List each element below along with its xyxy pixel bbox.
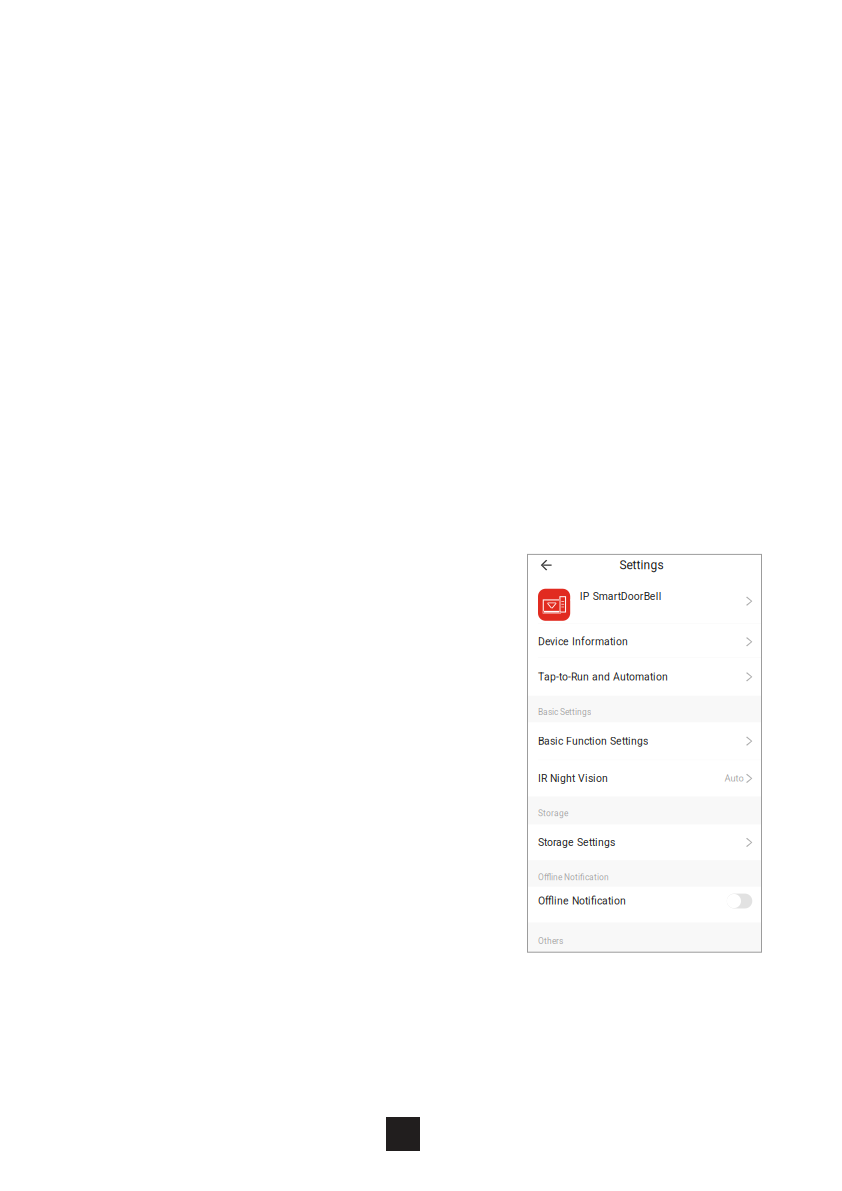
staticText: Device Information — [538, 636, 628, 648]
button[interactable]: Device Information — [527, 624, 761, 657]
staticText: IR Night Vision — [538, 772, 608, 784]
button[interactable]: IR Night Vision — [527, 760, 761, 796]
staticText: Tap-to-Run and Automation — [538, 671, 668, 683]
staticText: Basic Settings — [538, 707, 591, 717]
button[interactable]: Offline Notification — [527, 887, 761, 922]
button[interactable]: Storage Settings — [527, 825, 761, 860]
button[interactable]: Basic Function Settings — [527, 722, 761, 760]
staticText: Storage — [538, 809, 568, 818]
staticText: IP SmartDoorBell — [580, 590, 662, 603]
staticText: Offline Notification — [538, 895, 626, 907]
button[interactable]: Tap-to-Run and Automation — [527, 658, 761, 696]
staticText: Storage Settings — [538, 836, 615, 848]
button[interactable]: IP SmartDoorBell — [527, 576, 761, 623]
staticText: Auto — [725, 773, 744, 784]
staticText: Others — [538, 936, 563, 946]
staticText: Basic Function Settings — [538, 735, 648, 747]
staticText: Offline Notification — [538, 872, 609, 882]
button[interactable]: Back — [527, 555, 558, 575]
staticText: Settings — [619, 558, 663, 572]
